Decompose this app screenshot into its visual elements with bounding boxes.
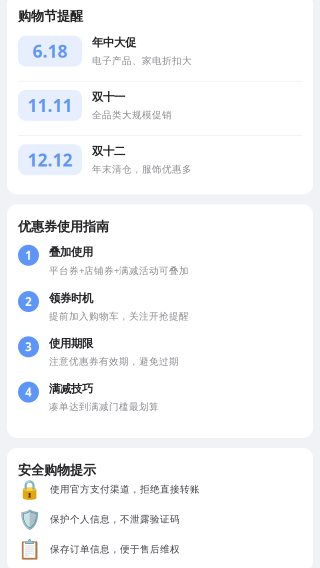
staticText: 凑单达到满减门槛最划算: [49, 401, 159, 413]
staticText: 全品类大规模促销: [92, 109, 172, 121]
staticText: 提前加入购物车，关注开抢提醒: [49, 310, 189, 322]
staticText: 年中大促: [92, 35, 136, 50]
button[interactable]: 2: [7, 291, 313, 336]
staticText: 11.11: [27, 94, 72, 117]
staticText: 6.18: [32, 39, 67, 63]
staticText: 注意优惠券有效期，避免过期: [49, 356, 179, 368]
button[interactable]: 🛡️: [7, 511, 313, 541]
button[interactable]: 6.18: [7, 27, 313, 81]
staticText: 双十一: [92, 90, 125, 104]
staticText: 电子产品、家电折扣大: [92, 55, 192, 67]
staticText: 保护个人信息，不泄露验证码: [50, 513, 180, 525]
staticText: 满减技巧: [49, 382, 93, 396]
staticText: 保存订单信息，便于售后维权: [50, 543, 180, 555]
staticText: 安全购物提示: [18, 462, 96, 478]
staticText: 12.12: [27, 148, 72, 171]
staticText: 4: [25, 384, 32, 400]
button[interactable]: 12.12: [7, 136, 313, 189]
staticText: 🔒: [18, 478, 41, 500]
staticText: 双十二: [92, 144, 125, 158]
staticText: 🛡️: [18, 508, 41, 530]
button[interactable]: 3: [7, 336, 313, 382]
button[interactable]: 1: [7, 245, 313, 291]
staticText: 平台券+店铺券+满减活动可叠加: [49, 264, 189, 277]
button[interactable]: 4: [7, 382, 313, 427]
staticText: 叠加使用: [49, 245, 93, 259]
staticText: 使用期限: [49, 336, 93, 351]
staticText: 1: [25, 247, 32, 263]
button[interactable]: 🔒: [7, 481, 313, 511]
staticText: 📋: [18, 538, 41, 560]
staticText: 年末清仓，服饰优惠多: [92, 163, 192, 175]
staticText: 2: [25, 294, 32, 309]
staticText: 3: [25, 339, 32, 355]
staticText: 使用官方支付渠道，拒绝直接转账: [50, 483, 200, 495]
button[interactable]: 📋: [7, 541, 313, 568]
staticText: 领券时机: [49, 291, 93, 305]
button[interactable]: 11.11: [7, 82, 313, 135]
staticText: 购物节提醒: [18, 8, 83, 24]
staticText: 优惠券使用指南: [18, 218, 109, 235]
